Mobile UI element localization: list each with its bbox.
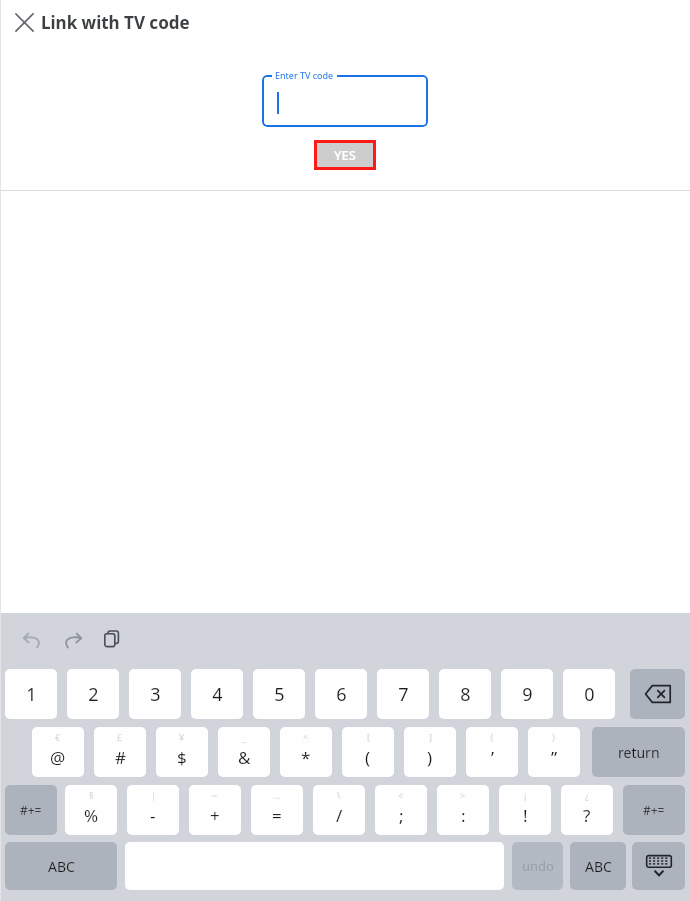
button[interactable]: return: [592, 727, 685, 777]
staticText: [: [367, 731, 370, 743]
staticText: (: [365, 746, 371, 769]
button[interactable]: §: [65, 785, 117, 835]
staticText: Link with TV code: [41, 11, 190, 34]
button[interactable]: 6: [315, 669, 367, 719]
button[interactable]: ~: [189, 785, 241, 835]
staticText: 6: [336, 682, 347, 707]
button[interactable]: 9: [501, 669, 553, 719]
staticText: ¡: [524, 789, 527, 801]
button[interactable]: €: [32, 727, 84, 777]
staticText: #+=: [20, 802, 42, 818]
button[interactable]: _: [218, 727, 270, 777]
staticText: $: [177, 746, 187, 769]
button[interactable]: [262, 75, 428, 127]
button[interactable]: …: [251, 785, 303, 835]
staticText: ~: [212, 789, 218, 801]
button[interactable]: 1: [5, 669, 57, 719]
button[interactable]: Backspace: [630, 669, 685, 719]
staticText: YES: [334, 146, 356, 164]
staticText: #: [115, 746, 126, 769]
staticText: 8: [460, 682, 471, 707]
staticText: …: [273, 789, 281, 801]
staticText: +: [210, 804, 220, 827]
staticText: #+=: [643, 802, 665, 818]
staticText: ’: [491, 746, 494, 769]
staticText: >: [460, 789, 466, 801]
staticText: @: [50, 746, 66, 769]
button[interactable]: }: [528, 727, 580, 777]
staticText: -: [150, 804, 156, 827]
staticText: 2: [88, 682, 99, 707]
button[interactable]: 7: [377, 669, 429, 719]
staticText: \: [337, 789, 341, 801]
button[interactable]: Undo: [16, 623, 48, 655]
button[interactable]: 5: [253, 669, 305, 719]
button[interactable]: £: [94, 727, 146, 777]
staticText: =: [272, 804, 282, 827]
staticText: ”: [551, 746, 558, 769]
staticText: 9: [522, 682, 533, 707]
staticText: ]: [429, 731, 432, 743]
button[interactable]: |: [127, 785, 179, 835]
button[interactable]: 4: [191, 669, 243, 719]
staticText: 5: [274, 682, 285, 707]
button[interactable]: #+=: [623, 785, 685, 835]
button[interactable]: Copy: [96, 623, 128, 655]
staticText: }: [552, 731, 556, 743]
staticText: ): [427, 746, 433, 769]
staticText: ^: [303, 731, 309, 743]
button[interactable]: YES: [317, 143, 373, 167]
button[interactable]: 3: [129, 669, 181, 719]
staticText: !: [523, 804, 528, 827]
staticText: €: [55, 731, 61, 743]
button[interactable]: [: [342, 727, 394, 777]
button[interactable]: #+=: [5, 785, 57, 835]
button[interactable]: Hide keyboard: [632, 842, 685, 890]
staticText: ¥: [179, 731, 185, 743]
staticText: |: [151, 789, 156, 801]
button[interactable]: ¿: [561, 785, 613, 835]
staticText: 1: [26, 682, 37, 707]
button[interactable]: {: [466, 727, 518, 777]
button[interactable]: <: [375, 785, 427, 835]
staticText: *: [301, 746, 311, 769]
button[interactable]: ^: [280, 727, 332, 777]
button[interactable]: ABC: [5, 842, 117, 890]
button[interactable]: 0: [563, 669, 615, 719]
button[interactable]: undo: [512, 842, 563, 890]
staticText: :: [461, 804, 466, 827]
button[interactable]: >: [437, 785, 489, 835]
staticText: £: [117, 731, 123, 743]
staticText: /: [336, 804, 343, 827]
button[interactable]: ]: [404, 727, 456, 777]
staticText: %: [84, 804, 99, 827]
button[interactable]: ¡: [499, 785, 551, 835]
staticText: _: [242, 731, 246, 743]
staticText: {: [490, 731, 494, 743]
staticText: <: [398, 789, 404, 801]
staticText: 3: [150, 682, 161, 707]
button[interactable]: Close: [6, 4, 42, 40]
staticText: ;: [399, 804, 404, 827]
staticText: Enter TV code: [275, 69, 334, 81]
button[interactable]: ABC: [570, 842, 626, 890]
button[interactable]: ¥: [156, 727, 208, 777]
staticText: 4: [212, 682, 223, 707]
staticText: ABC: [48, 857, 75, 876]
button[interactable]: 2: [67, 669, 119, 719]
staticText: return: [618, 743, 660, 762]
staticText: §: [89, 789, 94, 801]
staticText: ABC: [585, 857, 612, 876]
staticText: undo: [522, 857, 554, 875]
button[interactable]: \: [313, 785, 365, 835]
button[interactable]: 8: [439, 669, 491, 719]
staticText: &: [238, 746, 251, 769]
staticText: 7: [398, 682, 409, 707]
staticText: ?: [583, 804, 591, 827]
button[interactable]: Redo: [56, 623, 88, 655]
staticText: ¿: [585, 789, 589, 801]
staticText: 0: [584, 682, 595, 707]
